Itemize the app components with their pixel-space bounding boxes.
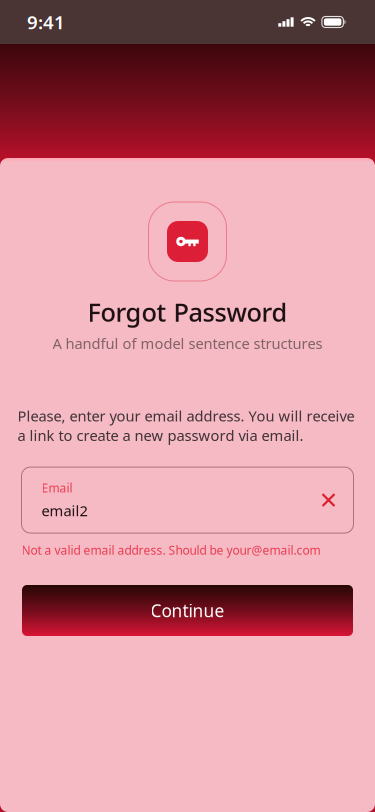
staticText: A handful of model sentence structures [52, 334, 322, 353]
staticText: Continue [150, 599, 224, 622]
staticText: 9:41 [27, 10, 65, 34]
button[interactable]: Clear text [314, 486, 342, 514]
button[interactable]: Continue [22, 585, 353, 636]
staticText: Not a valid email address. Should be you… [21, 542, 320, 558]
staticText: Please, enter your email address. You wi… [17, 406, 354, 445]
staticText: Email [41, 480, 72, 496]
staticText: email2 [41, 501, 87, 520]
staticText: Forgot Password [87, 295, 287, 329]
